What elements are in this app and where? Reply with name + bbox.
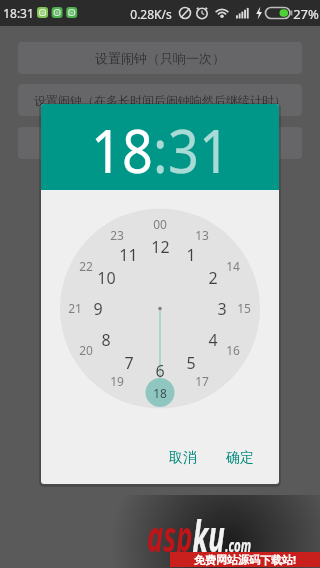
staticText: 18: [91, 108, 153, 190]
button[interactable]: 设置闹钟（只响一次）: [18, 42, 302, 74]
staticText: 6: [155, 360, 165, 380]
staticText: 16: [226, 342, 240, 358]
staticText: 31: [168, 108, 230, 190]
staticText: 11: [119, 244, 138, 264]
staticText: 确定: [226, 449, 254, 467]
staticText: 13: [195, 227, 209, 243]
staticText: 1: [186, 244, 196, 264]
staticText: .com: [225, 533, 251, 557]
staticText: 8: [101, 329, 111, 349]
button[interactable]: 设置闹钟（在多长时间后闹钟响然后继续计时）: [18, 84, 302, 116]
staticText: 设置闹钟（在多长时间后闹钟响然后继续计时）: [34, 93, 286, 108]
staticText: 3: [217, 298, 227, 318]
button[interactable]: [18, 127, 302, 159]
staticText: 14: [226, 258, 240, 274]
staticText: 4: [208, 329, 218, 349]
button[interactable]: 确定: [216, 444, 264, 472]
staticText: 15: [237, 300, 251, 316]
staticText: 00: [153, 216, 167, 232]
staticText: 22: [79, 258, 93, 274]
staticText: asp: [147, 506, 193, 565]
staticText: 7: [124, 352, 134, 372]
staticText: 2: [208, 267, 218, 287]
staticText: 10: [97, 267, 116, 287]
staticText: 设置闹钟（只响一次）: [95, 50, 225, 66]
staticText: :: [153, 108, 168, 190]
staticText: 18: [153, 385, 167, 401]
staticText: 17: [195, 373, 209, 389]
staticText: 21: [68, 300, 82, 316]
staticText: 23: [110, 227, 124, 243]
staticText: 12: [151, 236, 170, 256]
staticText: 0.28K/s: [130, 6, 172, 22]
staticText: 5: [186, 352, 196, 372]
staticText: 19: [110, 373, 124, 389]
staticText: ku: [193, 506, 225, 565]
staticText: 9: [93, 298, 103, 318]
button[interactable]: 取消: [159, 444, 207, 472]
staticText: 20: [79, 342, 93, 358]
staticText: 27%: [293, 5, 319, 22]
staticText: 18:31: [3, 5, 34, 21]
staticText: 取消: [169, 449, 197, 467]
staticText: 免费网站源码下载站!: [194, 552, 297, 567]
